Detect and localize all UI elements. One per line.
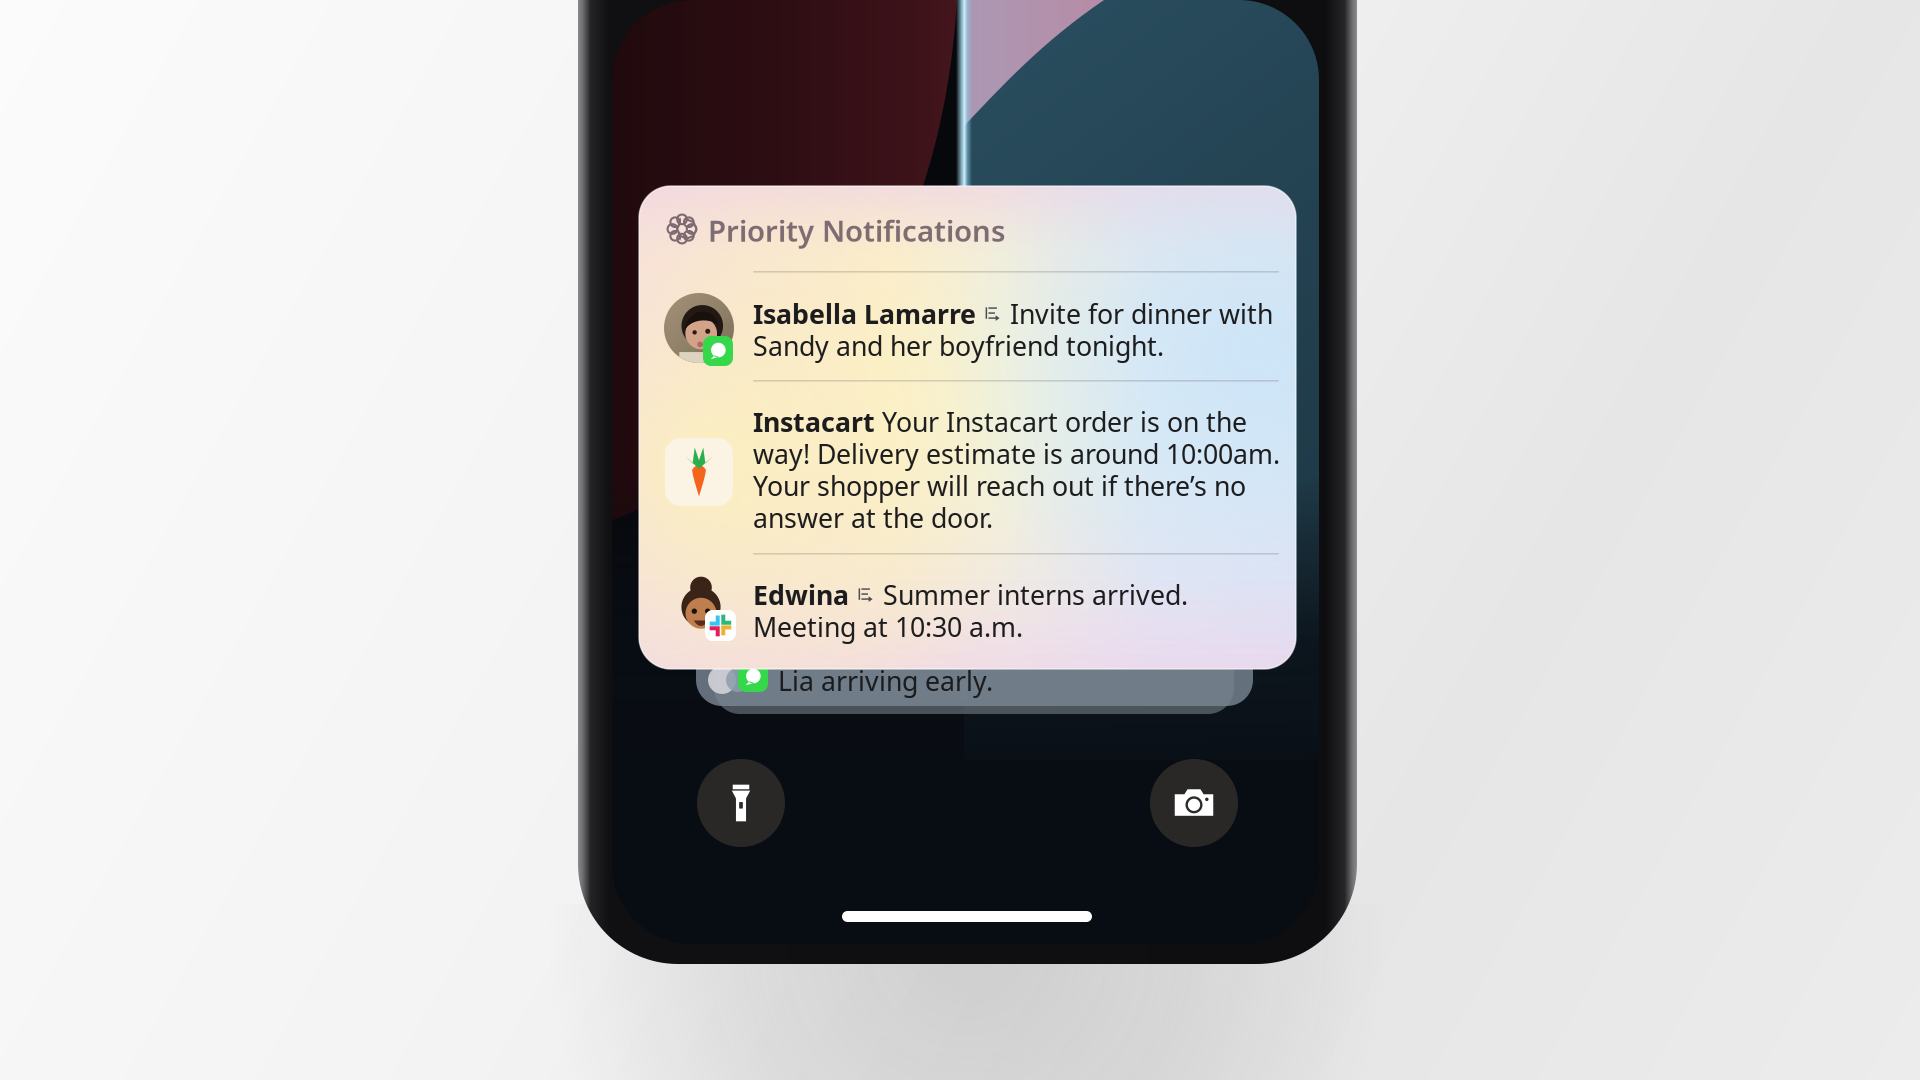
staticText: Edwina [753, 577, 849, 612]
staticText: Meeting at 10:30 a.m. [753, 609, 1023, 644]
staticText: way! Delivery estimate is around 10:00am… [753, 436, 1280, 471]
staticText: Sandy and her boyfriend tonight. [753, 328, 1164, 363]
staticText: Your Instacart order is on the [875, 404, 1247, 439]
staticText: Your shopper will reach out if there’s n… [753, 468, 1246, 503]
staticText: Lia arriving early. [778, 663, 993, 698]
staticText: Isabella Lamarre [753, 296, 976, 331]
button[interactable]: Camera [1150, 759, 1238, 847]
staticText: answer at the door. [753, 500, 993, 535]
staticText: Instacart [753, 404, 875, 439]
staticText: Invite for dinner with [1003, 296, 1273, 331]
staticText: Priority Notifications [708, 211, 1005, 250]
button[interactable]: Flashlight [697, 759, 785, 847]
staticText: Summer interns arrived. [876, 577, 1188, 612]
